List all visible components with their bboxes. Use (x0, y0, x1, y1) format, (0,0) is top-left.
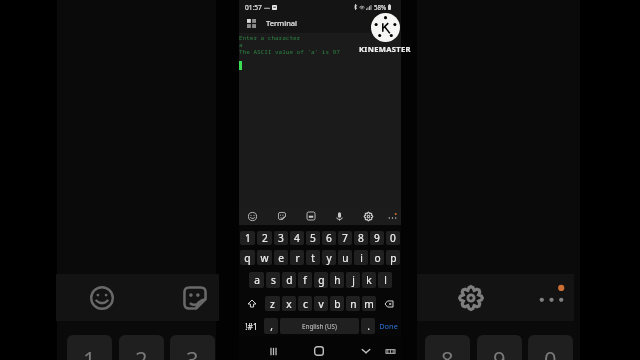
button[interactable]: w (257, 250, 272, 265)
button[interactable]: c (298, 296, 312, 311)
staticText: l (384, 273, 387, 287)
staticText: t (311, 251, 315, 265)
staticText: g (318, 273, 325, 287)
staticText: , (270, 319, 273, 333)
staticText: 2 (262, 231, 268, 245)
button[interactable]: 3 (274, 231, 288, 245)
button[interactable]: More options (384, 208, 400, 224)
staticText: s (271, 273, 276, 287)
button[interactable]: Keyboard (381, 342, 399, 360)
staticText: Done (379, 321, 398, 331)
button[interactable]: q (240, 250, 255, 265)
staticText: 58% (374, 3, 387, 11)
button[interactable]: 0 (386, 231, 400, 245)
button[interactable]: Clipboard (303, 208, 319, 224)
button[interactable]: h (330, 272, 344, 288)
staticText: y (326, 251, 332, 265)
button[interactable]: Home (310, 342, 328, 360)
button[interactable]: , (264, 318, 278, 334)
button[interactable]: 8 (354, 231, 368, 245)
button[interactable]: . (361, 318, 375, 334)
staticText: i (360, 251, 363, 265)
staticText: 6 (326, 231, 332, 245)
button[interactable]: u (338, 250, 352, 265)
staticText: 9 (374, 231, 380, 245)
staticText: Terminal (266, 18, 298, 28)
staticText: 5 (310, 231, 316, 245)
staticText: . (367, 319, 370, 333)
button[interactable]: 4 (290, 231, 304, 245)
staticText: o (374, 251, 381, 265)
button[interactable]: e (274, 250, 288, 265)
staticText: e (278, 251, 284, 265)
button[interactable]: i (354, 250, 368, 265)
button[interactable]: Shift (240, 296, 263, 311)
staticText: u (342, 251, 349, 265)
button[interactable]: y (322, 250, 336, 265)
staticText: r (295, 251, 300, 265)
button[interactable]: !#1 (240, 318, 262, 334)
staticText: a (239, 41, 243, 49)
staticText: h (334, 273, 341, 287)
staticText: 9 (493, 344, 506, 360)
button[interactable]: 1 (240, 231, 255, 245)
button[interactable]: n (346, 296, 360, 311)
button[interactable]: Done (377, 318, 400, 334)
staticText: KINEMASTER (359, 44, 411, 54)
button[interactable]: o (370, 250, 384, 265)
staticText: Enter a character (239, 34, 301, 42)
button[interactable]: p (386, 250, 400, 265)
staticText: 1 (83, 344, 96, 360)
staticText: The ASCII value of 'a' is 97 (239, 48, 340, 56)
button[interactable]: d (282, 272, 296, 288)
staticText: m (364, 297, 374, 311)
staticText: English (US) (302, 322, 337, 331)
button[interactable]: 5 (306, 231, 320, 245)
button[interactable]: j (346, 272, 360, 288)
staticText: p (390, 251, 397, 265)
staticText: k (366, 273, 372, 287)
button[interactable]: 9 (370, 231, 384, 245)
staticText: c (303, 297, 308, 311)
staticText: 0 (390, 231, 396, 245)
button[interactable]: z (265, 296, 280, 311)
button[interactable]: Hide keyboard (357, 342, 375, 360)
button[interactable]: b (330, 296, 344, 311)
staticText: 3 (278, 231, 284, 245)
button[interactable]: Backspace (378, 296, 400, 311)
button[interactable]: 7 (338, 231, 352, 245)
button[interactable]: l (378, 272, 392, 288)
staticText: q (244, 251, 251, 265)
staticText: z (270, 297, 275, 311)
staticText: d (286, 273, 293, 287)
button[interactable]: 6 (322, 231, 336, 245)
staticText: 01:57 (245, 3, 262, 12)
staticText: b (334, 297, 341, 311)
staticText: f (303, 273, 307, 287)
button[interactable]: Keyboard settings (360, 208, 376, 224)
button[interactable]: 2 (257, 231, 272, 245)
button[interactable]: m (362, 296, 376, 311)
button[interactable]: v (314, 296, 328, 311)
button[interactable]: s (266, 272, 280, 288)
button[interactable]: g (314, 272, 328, 288)
button[interactable]: k (362, 272, 376, 288)
staticText: 1 (245, 231, 251, 245)
button[interactable]: Voice input (331, 208, 347, 224)
staticText: 8 (441, 344, 454, 360)
button[interactable]: t (306, 250, 320, 265)
button[interactable]: Emoji (244, 208, 260, 224)
button[interactable]: Recent apps (264, 342, 282, 360)
button[interactable]: English (US) (280, 318, 359, 334)
staticText: 8 (358, 231, 364, 245)
button[interactable]: a (249, 272, 264, 288)
button[interactable]: x (282, 296, 296, 311)
button[interactable]: Sessions (243, 15, 259, 31)
button[interactable]: r (290, 250, 304, 265)
staticText: !#1 (245, 321, 258, 332)
staticText: v (318, 297, 324, 311)
staticText: a (254, 273, 260, 287)
button[interactable]: f (298, 272, 312, 288)
button[interactable]: Stickers (274, 208, 290, 224)
staticText: 3 (186, 344, 199, 360)
